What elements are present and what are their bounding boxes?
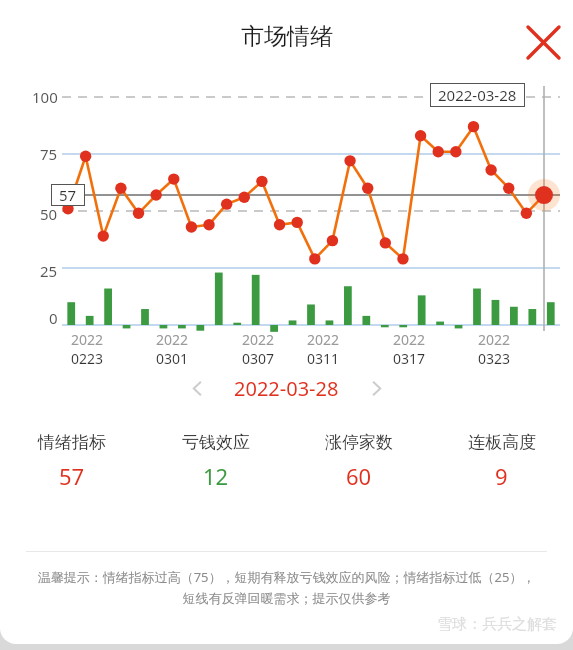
staticText: 0223 (71, 349, 104, 368)
staticText: 2022-03-28 (234, 375, 339, 402)
staticText: 0317 (393, 349, 426, 368)
staticText: 12 (203, 461, 229, 491)
staticText: 100 (32, 87, 58, 107)
staticText: 市场情绪 (241, 22, 333, 51)
staticText: 57 (59, 185, 77, 205)
button[interactable]: Previous day (176, 367, 218, 409)
staticText: 2022 (393, 330, 426, 349)
button[interactable]: 连板高度 (430, 430, 573, 493)
staticText: 2022-03-28 (438, 85, 517, 105)
staticText: 75 (40, 144, 58, 164)
staticText: 0 (49, 308, 58, 328)
staticText: 0323 (478, 349, 511, 368)
button[interactable]: Next day (355, 367, 397, 409)
staticText: 亏钱效应 (182, 432, 250, 453)
staticText: 2022 (478, 330, 511, 349)
staticText: 0307 (242, 349, 275, 368)
staticText: 2022 (156, 330, 189, 349)
staticText: 情绪指标 (38, 432, 106, 453)
staticText: 雪球：兵兵之解套 (437, 615, 557, 634)
staticText: 50 (40, 204, 58, 224)
staticText: 25 (40, 261, 58, 281)
staticText: 温馨提示：情绪指标过高（75），短期有释放亏钱效应的风险；情绪指标过低（25），… (36, 568, 537, 607)
staticText: 0301 (156, 349, 189, 368)
staticText: 2022 (242, 330, 275, 349)
staticText: 2022 (71, 330, 104, 349)
button[interactable]: 情绪指标 (0, 430, 144, 493)
staticText: 2022 (307, 330, 340, 349)
staticText: 连板高度 (468, 432, 536, 453)
button[interactable]: 2022-03-28 (218, 371, 355, 406)
staticText: 0311 (307, 349, 340, 368)
button[interactable]: 涨停家数 (287, 430, 430, 493)
staticText: 57 (59, 461, 85, 491)
staticText: 涨停家数 (325, 432, 393, 453)
staticText: 60 (346, 461, 372, 491)
button[interactable]: 亏钱效应 (144, 430, 287, 493)
staticText: 9 (495, 461, 508, 491)
button[interactable]: Close (519, 18, 567, 66)
